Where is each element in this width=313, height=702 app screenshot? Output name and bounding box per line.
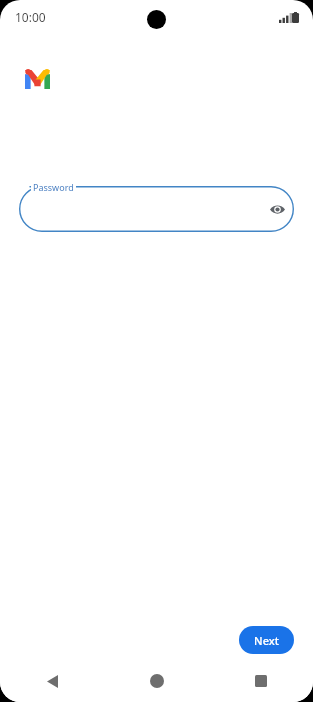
staticText: Next [254,633,279,648]
staticText: 10:00 [15,9,46,25]
button[interactable]: Back [0,660,105,702]
button[interactable]: Password [19,186,294,232]
button[interactable]: Home [105,660,209,702]
staticText: Password [33,181,74,193]
button[interactable]: Show password [264,196,290,222]
button[interactable]: Recent apps [209,660,313,702]
button[interactable]: Next [239,626,294,654]
